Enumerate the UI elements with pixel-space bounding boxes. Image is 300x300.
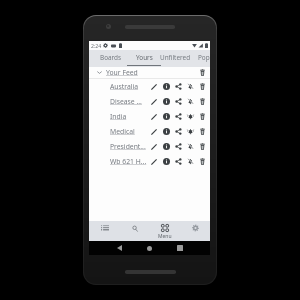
button[interactable]: Your Feed: [89, 67, 210, 78]
staticText: India: [110, 112, 127, 121]
button[interactable]: Medical: [89, 124, 210, 139]
button[interactable]: Recents: [170, 241, 190, 255]
button[interactable]: Edit: [148, 154, 160, 169]
button[interactable]: Unfiltered: [159, 50, 191, 67]
button[interactable]: Australia: [89, 79, 210, 94]
button[interactable]: Pop: [194, 50, 214, 67]
button[interactable]: Delete: [196, 124, 208, 139]
button[interactable]: Notifications on: [184, 109, 196, 124]
button[interactable]: Edit: [148, 124, 160, 139]
button[interactable]: Info: [160, 94, 172, 109]
button[interactable]: Info: [160, 109, 172, 124]
button[interactable]: Notifications off: [184, 139, 196, 154]
button[interactable]: Share: [172, 124, 184, 139]
button[interactable]: Share: [172, 154, 184, 169]
staticText: 2:24: [91, 42, 102, 49]
button[interactable]: India: [89, 109, 210, 124]
staticText: Disease ...: [110, 97, 142, 106]
button[interactable]: Back: [109, 241, 129, 255]
staticText: Wb 621 H...: [110, 157, 147, 166]
button[interactable]: Edit: [148, 94, 160, 109]
button[interactable]: Delete feed: [197, 67, 208, 78]
button[interactable]: Home: [139, 241, 159, 255]
button[interactable]: Wb 621 H...: [89, 154, 210, 169]
button[interactable]: Notifications off: [184, 154, 196, 169]
staticText: Medical: [110, 127, 135, 136]
button[interactable]: Search: [120, 221, 150, 241]
button[interactable]: Info: [160, 124, 172, 139]
staticText: Pop: [198, 53, 210, 62]
button[interactable]: Notifications off: [184, 79, 196, 94]
staticText: President...: [110, 142, 146, 151]
button[interactable]: Settings: [180, 221, 210, 241]
button[interactable]: Menu: [150, 221, 180, 241]
staticText: Your Feed: [106, 68, 138, 77]
button[interactable]: Disease ...: [89, 94, 210, 109]
button[interactable]: President...: [89, 139, 210, 154]
button[interactable]: Delete: [196, 79, 208, 94]
button[interactable]: Notifications off: [184, 94, 196, 109]
button[interactable]: Notifications on: [184, 124, 196, 139]
button[interactable]: Share: [172, 79, 184, 94]
button[interactable]: Share: [172, 139, 184, 154]
button[interactable]: Lists: [89, 221, 120, 241]
staticText: Yours: [136, 53, 153, 62]
button[interactable]: Delete: [196, 139, 208, 154]
button[interactable]: Info: [160, 154, 172, 169]
button[interactable]: Info: [160, 139, 172, 154]
staticText: Unfiltered: [160, 53, 191, 62]
staticText: Australia: [110, 82, 139, 91]
button[interactable]: Share: [172, 94, 184, 109]
button[interactable]: Info: [160, 79, 172, 94]
button[interactable]: Edit: [148, 139, 160, 154]
staticText: Menu: [158, 233, 172, 240]
button[interactable]: Edit: [148, 79, 160, 94]
staticText: Boards: [100, 53, 121, 62]
button[interactable]: Delete: [196, 94, 208, 109]
button[interactable]: Delete: [196, 154, 208, 169]
button[interactable]: Delete: [196, 109, 208, 124]
button[interactable]: Edit: [148, 109, 160, 124]
button[interactable]: Yours: [127, 50, 161, 67]
button[interactable]: Share: [172, 109, 184, 124]
button[interactable]: Boards: [100, 50, 121, 67]
